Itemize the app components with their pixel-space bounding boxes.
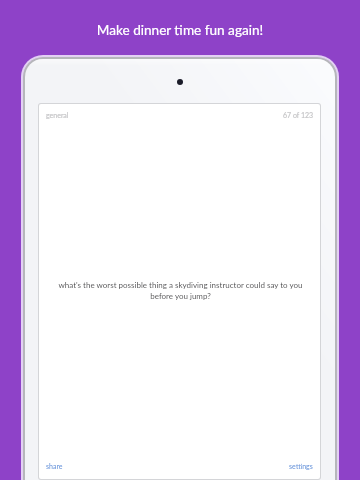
staticText: what's the worst possible thing a skydiv… bbox=[41, 280, 320, 301]
button[interactable]: share bbox=[41, 456, 68, 474]
staticText: Make dinner time fun again! bbox=[0, 22, 360, 38]
staticText: general bbox=[46, 111, 69, 119]
button[interactable]: settings bbox=[284, 456, 318, 474]
button[interactable]: Show the next joke bbox=[39, 270, 320, 310]
button[interactable]: general bbox=[41, 106, 74, 123]
staticText: 67 of 123 bbox=[283, 111, 314, 119]
staticText: share bbox=[46, 462, 63, 470]
staticText: settings bbox=[289, 462, 313, 470]
